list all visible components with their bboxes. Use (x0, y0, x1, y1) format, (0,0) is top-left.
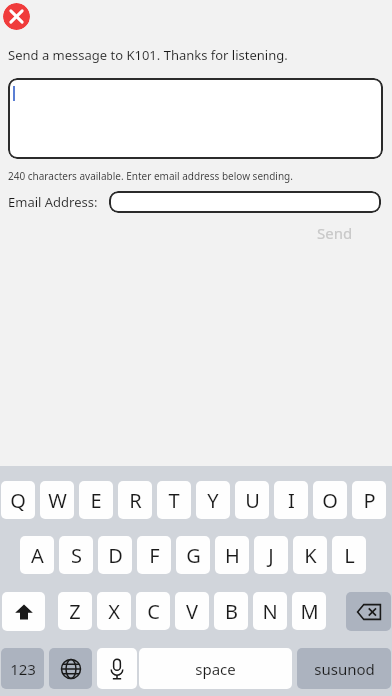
staticText: S (71, 542, 82, 569)
staticText: Z (69, 598, 81, 625)
button[interactable]: J (254, 536, 288, 574)
button[interactable]: Close (3, 3, 30, 30)
staticText: M (300, 598, 319, 625)
button[interactable]: R (118, 481, 152, 519)
button[interactable]: Shift (2, 592, 45, 631)
button[interactable]: A (20, 536, 54, 574)
staticText: space (195, 659, 236, 679)
staticText: susunod (314, 659, 375, 679)
staticText: X (108, 598, 120, 625)
button[interactable]: V (175, 592, 209, 630)
staticText: D (108, 542, 123, 569)
button[interactable]: S (59, 536, 93, 574)
staticText: V (186, 598, 198, 625)
button[interactable]: F (137, 536, 171, 574)
staticText: R (129, 487, 142, 514)
button[interactable]: W (40, 481, 74, 519)
staticText: L (344, 542, 355, 569)
staticText: U (245, 487, 260, 514)
button[interactable]: C (136, 592, 170, 630)
staticText: Y (207, 487, 219, 514)
button[interactable]: H (215, 536, 249, 574)
staticText: J (268, 542, 274, 569)
button[interactable]: T (157, 481, 191, 519)
button[interactable]: B (214, 592, 248, 630)
staticText: B (225, 598, 238, 625)
staticText: Send (317, 223, 353, 243)
staticText: C (147, 598, 160, 625)
staticText: A (31, 542, 44, 569)
staticText: E (90, 487, 102, 514)
button[interactable]: I (274, 481, 308, 519)
button[interactable]: X (97, 592, 131, 630)
staticText: F (149, 542, 160, 569)
staticText: W (48, 487, 67, 514)
staticText: N (262, 598, 278, 625)
staticText: G (186, 542, 201, 569)
staticText: H (225, 542, 240, 569)
button[interactable] (8, 78, 383, 159)
button[interactable] (109, 191, 381, 213)
button[interactable]: N (253, 592, 287, 630)
button[interactable]: susunod (297, 648, 391, 689)
staticText: K (304, 542, 317, 569)
button[interactable]: Change keyboard (49, 648, 92, 689)
staticText: Send a message to K101. Thanks for liste… (8, 46, 288, 64)
staticText: I (288, 487, 295, 514)
button[interactable]: K (293, 536, 327, 574)
button[interactable]: Q (1, 481, 35, 519)
button[interactable]: 123 (1, 648, 44, 689)
staticText: Email Address: (8, 193, 98, 211)
button[interactable]: G (176, 536, 210, 574)
staticText: P (363, 487, 376, 514)
button[interactable]: L (332, 536, 366, 574)
button[interactable]: E (79, 481, 113, 519)
button[interactable]: D (98, 536, 132, 574)
button[interactable]: Backspace (346, 592, 391, 631)
staticText: Q (10, 487, 26, 514)
button[interactable]: space (139, 648, 292, 689)
button[interactable]: Voice input (97, 648, 137, 689)
staticText: 123 (10, 659, 36, 679)
button[interactable]: P (352, 481, 386, 519)
staticText: O (322, 487, 338, 514)
button[interactable]: Z (58, 592, 92, 630)
button[interactable]: U (235, 481, 269, 519)
staticText: T (168, 487, 180, 514)
button[interactable]: O (313, 481, 347, 519)
button[interactable]: M (292, 592, 326, 630)
button[interactable]: Send (305, 221, 365, 245)
staticText: 240 characters available. Enter email ad… (8, 169, 293, 183)
button[interactable]: Y (196, 481, 230, 519)
